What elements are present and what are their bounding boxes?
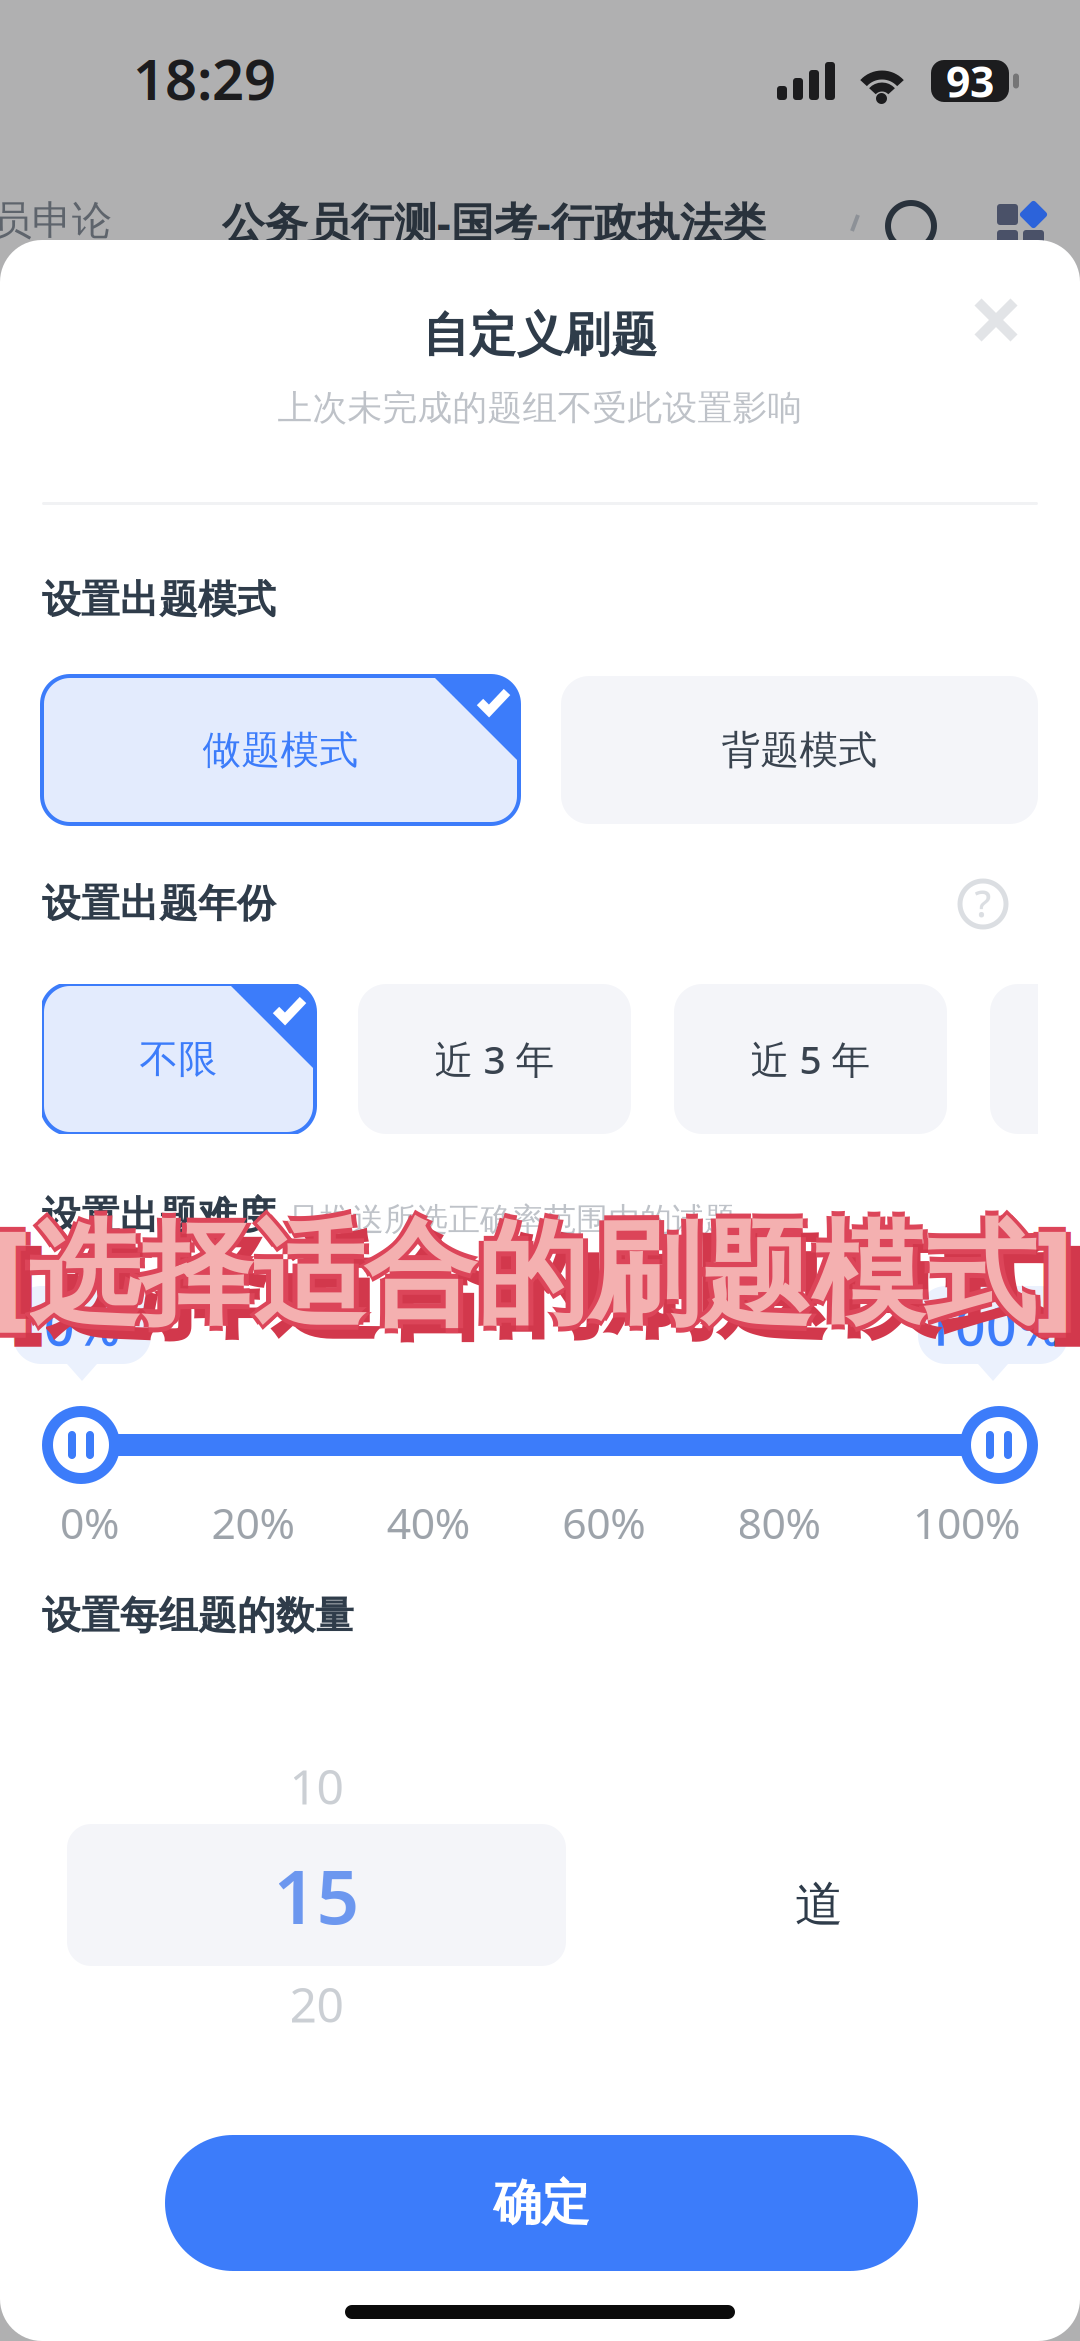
staticText: 40%: [387, 1494, 470, 1551]
staticText: [选择适合的刷题模式]: [0, 1196, 1067, 1345]
staticText: 公务员行测-国考-行政执法类: [222, 194, 766, 251]
button[interactable]: 关闭: [941, 265, 1051, 375]
staticText: 100%: [924, 1290, 1062, 1360]
staticText: 10: [289, 1754, 343, 1818]
staticText: ?: [974, 878, 991, 928]
staticText: 上次未完成的题组不受此设置影响: [277, 387, 802, 429]
staticText: 设置出题难度: [42, 1192, 276, 1239]
button[interactable]: 年份说明: [947, 868, 1019, 940]
staticText: 背题模式: [721, 726, 877, 774]
staticText: 确定: [493, 2173, 589, 2232]
button[interactable]: 近 8 年: [990, 984, 1080, 1134]
staticText: 15: [273, 1845, 359, 1945]
staticText: 员申论: [0, 196, 112, 245]
staticText: 80%: [738, 1494, 821, 1551]
staticText: 93: [946, 53, 994, 109]
staticText: 0%: [44, 1290, 120, 1360]
staticText: 设置出题模式: [42, 576, 276, 623]
button[interactable]: 做题模式: [42, 676, 519, 824]
staticText: 设置每组题的数量: [42, 1592, 354, 1639]
button[interactable]: 背题模式: [561, 676, 1038, 824]
staticText: [选择适合的刷题模式]: [0, 1196, 1072, 1345]
staticText: 60%: [562, 1494, 645, 1551]
staticText: 20%: [211, 1494, 294, 1551]
staticText: 近 3 年: [434, 1033, 554, 1085]
button[interactable]: 近 3 年: [358, 984, 631, 1134]
staticText: 自定义刷题: [422, 306, 657, 364]
staticText: [选择适合的刷题模式]: [8, 1210, 1080, 1359]
staticText: [选择适合的刷题模式]: [0, 1191, 1072, 1340]
staticText: 不限: [139, 1035, 217, 1083]
staticText: 100%: [913, 1494, 1020, 1551]
staticText: 近 5 年: [750, 1033, 870, 1085]
staticText: [选择适合的刷题模式]: [0, 1196, 1077, 1345]
staticText: 做题模式: [202, 726, 358, 774]
staticText: 18:29: [133, 41, 276, 115]
button[interactable]: 近 5 年: [674, 984, 947, 1134]
staticText: 只推送所选正确率范围内的试题: [288, 1200, 736, 1239]
staticText: [选择适合的刷题模式]: [0, 1201, 1072, 1350]
staticText: 设置出题年份: [42, 880, 276, 927]
staticText: 0%: [60, 1494, 119, 1551]
button[interactable]: 确定: [165, 2135, 918, 2271]
button[interactable]: 不限: [42, 984, 315, 1134]
staticText: 20: [289, 1972, 343, 2036]
staticText: 道: [795, 1875, 843, 1934]
